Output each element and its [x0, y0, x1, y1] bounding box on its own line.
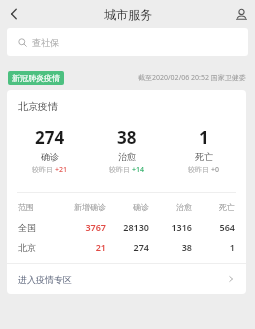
staticText: 3767: [62, 221, 106, 233]
staticText: 较昨日: [188, 165, 211, 175]
staticText: 确诊: [106, 202, 149, 212]
staticText: 28130: [106, 221, 149, 233]
staticText: 进入疫情专区: [18, 274, 72, 285]
button[interactable]: 进入疫情专区: [7, 264, 246, 294]
button[interactable]: Profile: [227, 0, 255, 28]
staticText: 较昨日: [32, 165, 55, 175]
staticText: 治愈: [149, 202, 192, 212]
staticText: 38: [149, 241, 192, 253]
staticText: +14: [132, 165, 145, 175]
staticText: 274: [35, 126, 65, 149]
staticText: 1: [199, 126, 209, 149]
staticText: 38: [117, 126, 137, 149]
staticText: 确诊: [41, 151, 59, 162]
staticText: 范围: [18, 202, 62, 212]
button[interactable]: Back: [0, 0, 28, 28]
staticText: 全国: [18, 222, 62, 233]
staticText: 新冠肺炎疫情: [12, 73, 60, 83]
staticText: 北京疫情: [18, 100, 58, 113]
staticText: 城市服务: [104, 7, 152, 22]
staticText: 较昨日: [109, 165, 132, 175]
staticText: 1: [192, 241, 235, 253]
staticText: 北京: [18, 242, 62, 253]
staticText: 死亡: [192, 202, 235, 212]
staticText: 治愈: [118, 151, 136, 162]
staticText: 查社保: [32, 37, 59, 48]
staticText: 截至2020/02/06 20:52 国家卫健委: [138, 73, 246, 83]
staticText: 死亡: [195, 151, 213, 162]
staticText: 新增确诊: [62, 202, 106, 212]
staticText: 274: [106, 241, 149, 253]
staticText: 21: [62, 241, 106, 253]
button[interactable]: 查社保: [7, 28, 248, 56]
staticText: 564: [192, 221, 235, 233]
staticText: +21: [55, 165, 68, 175]
staticText: +0: [211, 165, 220, 175]
staticText: 1316: [149, 221, 192, 233]
